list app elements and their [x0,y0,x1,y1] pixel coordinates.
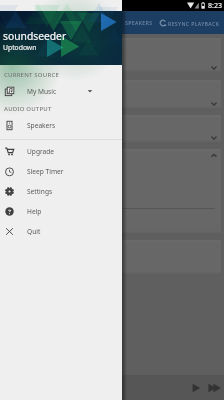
staticText: CURRENT SOURCE [4,71,59,79]
button[interactable] [3,38,221,74]
staticText: Settings [27,187,53,196]
button[interactable]: Sleep Timer [0,161,122,181]
button[interactable]: Next track [207,381,221,395]
staticText: soundseeder [3,29,67,43]
staticText: RESYNC PLAYBACK [168,20,220,27]
button[interactable]: Play [189,381,203,395]
staticText: Uptodown [3,43,37,52]
button[interactable] [3,240,221,276]
staticText: 8:23 [208,1,222,11]
button[interactable] [3,80,221,110]
button[interactable]: Settings [0,181,122,201]
staticText: Upgrade [27,147,54,156]
staticText: Sleep Timer [27,167,64,176]
staticText: Quit [27,227,41,236]
button[interactable] [3,115,221,144]
button[interactable]: My Music [0,81,122,101]
button[interactable]: SPEAKERS [121,19,157,26]
staticText: AUDIO OUTPUT [4,105,52,113]
staticText: Speakers [27,121,56,130]
button[interactable]: Speakers [0,115,122,135]
button[interactable] [3,149,221,235]
staticText: My Music [27,87,57,96]
button[interactable]: RESYNC PLAYBACK [159,19,220,27]
button[interactable]: Quit [0,221,122,241]
button[interactable]: Upgrade [0,141,122,161]
button[interactable]: Help [0,201,122,221]
staticText: SPEAKERS [125,19,153,26]
staticText: Help [27,207,42,216]
